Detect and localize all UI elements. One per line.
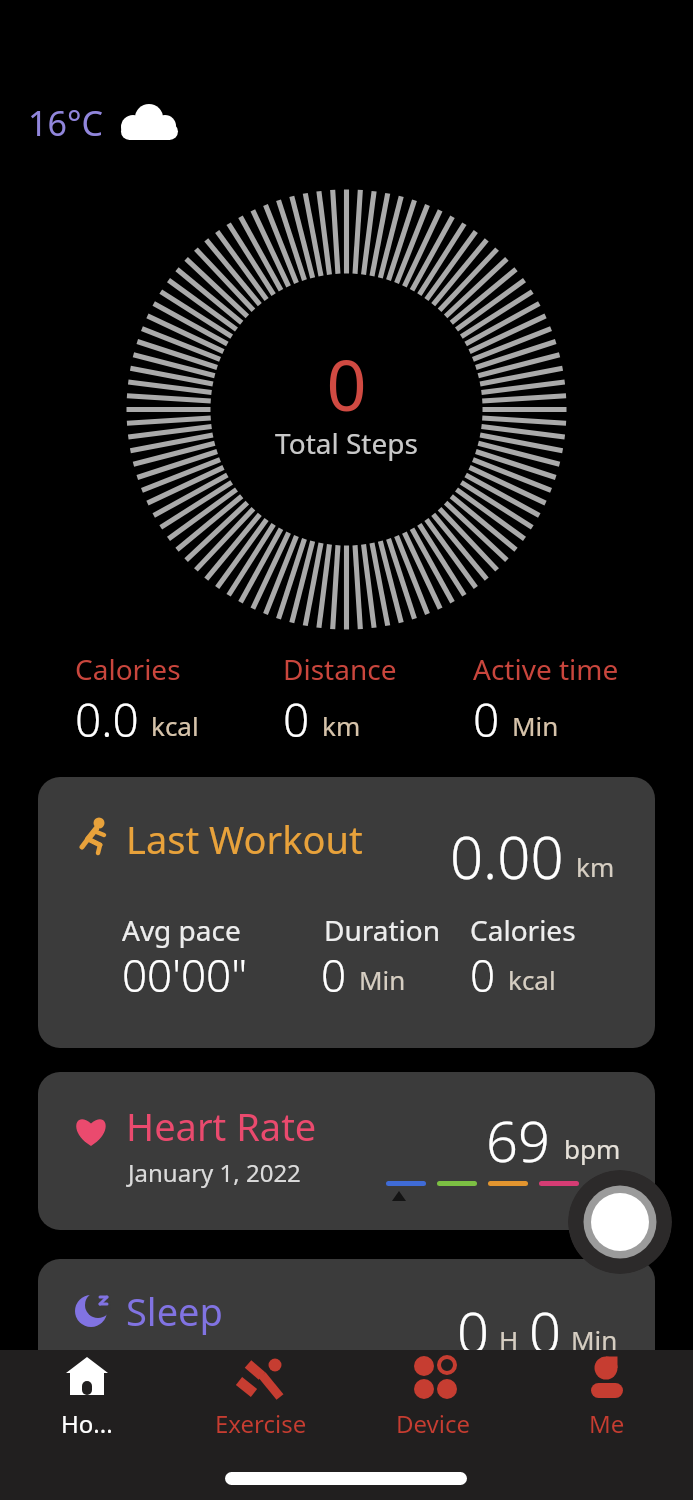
button[interactable] xyxy=(568,1170,672,1274)
staticText: Exercise xyxy=(215,1407,307,1440)
button[interactable]: Heart Rate xyxy=(38,1072,655,1230)
staticText: 0 xyxy=(473,688,500,751)
button[interactable]: Last Workout xyxy=(38,777,655,1048)
staticText: H xyxy=(499,1322,519,1357)
staticText: kcal xyxy=(508,962,556,997)
staticText: 69 xyxy=(486,1102,550,1178)
button[interactable]: Distance xyxy=(283,650,397,751)
staticText: kcal xyxy=(151,708,199,743)
staticText: Ho... xyxy=(61,1407,113,1440)
staticText: Total Steps xyxy=(0,424,693,462)
button[interactable]: Active time xyxy=(473,650,619,751)
button[interactable]: Exercise xyxy=(174,1355,347,1440)
staticText: Distance xyxy=(283,650,397,688)
staticText: January 1, 2022 xyxy=(128,1156,301,1189)
staticText: Calories xyxy=(470,911,576,949)
staticText: Calories xyxy=(75,650,181,688)
staticText: Sleep xyxy=(126,1285,223,1337)
staticText: 0 xyxy=(0,336,693,431)
staticText: Device xyxy=(396,1407,471,1440)
button[interactable]: Device xyxy=(347,1355,520,1440)
staticText: 0.0 xyxy=(75,688,139,751)
staticText: km xyxy=(322,708,361,743)
staticText: Last Workout xyxy=(126,813,363,865)
staticText: 0 xyxy=(321,945,347,1005)
staticText: 0.00 xyxy=(450,817,564,896)
staticText: 0 xyxy=(470,945,496,1005)
staticText: Active time xyxy=(473,650,619,688)
staticText: Min xyxy=(512,708,559,743)
staticText: 00'00" xyxy=(122,945,248,1005)
button[interactable]: 16°C xyxy=(28,100,181,146)
staticText: Avg pace xyxy=(122,911,241,949)
button[interactable]: Me xyxy=(520,1355,693,1440)
staticText: Me xyxy=(589,1407,625,1440)
staticText: Duration xyxy=(324,911,441,949)
button[interactable]: Calories xyxy=(75,650,199,751)
staticText: Min xyxy=(571,1322,618,1357)
button[interactable]: Ho... xyxy=(0,1355,174,1440)
staticText: 16°C xyxy=(28,100,103,146)
staticText: 0 xyxy=(457,1293,489,1369)
staticText: Heart Rate xyxy=(126,1100,317,1152)
staticText: bpm xyxy=(564,1131,621,1166)
button[interactable]: Sleep xyxy=(38,1259,655,1389)
staticText: Min xyxy=(359,962,406,997)
staticText: 0 xyxy=(529,1293,561,1369)
staticText: km xyxy=(576,849,615,884)
staticText: 0 xyxy=(283,688,310,751)
